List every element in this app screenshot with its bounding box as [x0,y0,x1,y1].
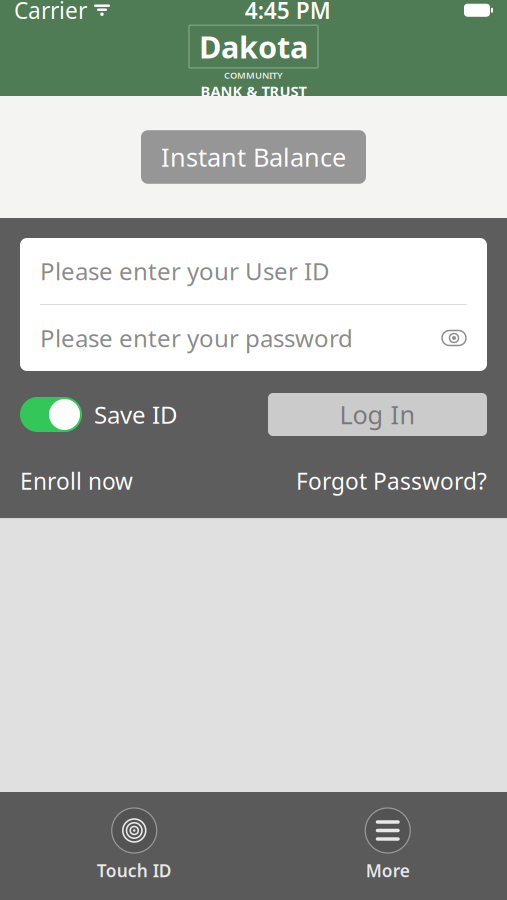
staticText: Please enter your password [40,322,353,354]
staticText: Instant Balance [161,140,346,174]
staticText: Forgot Password? [296,466,487,496]
staticText: 4:45 PM [245,0,331,25]
staticText: Save ID [94,399,178,430]
staticText: More [366,859,410,882]
button[interactable]: More [365,808,410,882]
staticText: Carrier [14,0,87,25]
button[interactable]: Save ID [20,397,178,432]
button[interactable]: Touch ID [97,808,172,882]
staticText: Please enter your User ID [40,255,330,287]
button[interactable]: Please enter your User ID [20,238,487,304]
button[interactable]: Instant Balance [141,130,366,184]
staticText: BANK & TRUST [200,81,306,101]
staticText: Enroll now [20,466,133,496]
button[interactable]: Please enter your password [20,305,487,371]
staticText: Dakota [199,26,308,67]
staticText: Touch ID [97,859,172,882]
button[interactable]: Forgot Password? [296,466,487,496]
button[interactable]: Log In [268,393,487,436]
staticText: COMMUNITY [224,69,283,81]
staticText: Log In [339,398,415,431]
button[interactable]: Enroll now [20,466,133,496]
